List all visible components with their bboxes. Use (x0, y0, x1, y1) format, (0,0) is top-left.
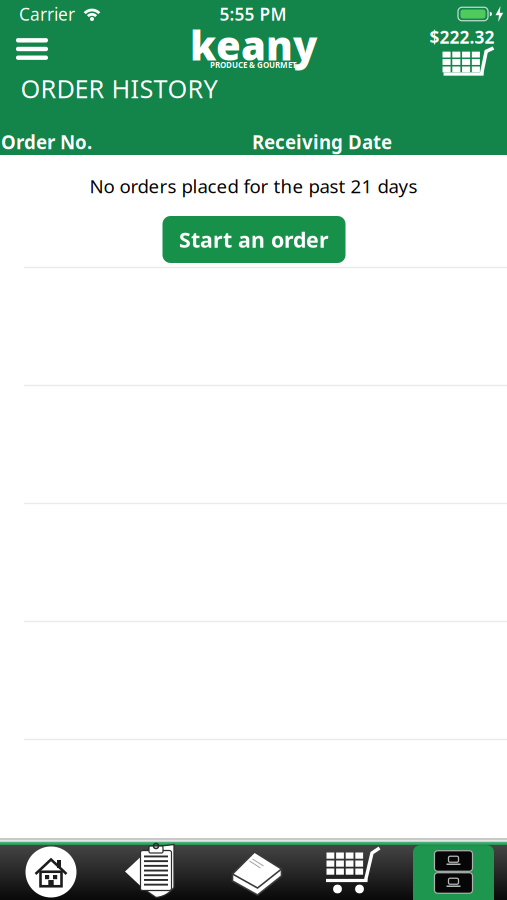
button[interactable] (0, 838, 101, 900)
button[interactable] (12, 34, 52, 64)
staticText: $222.32 (429, 25, 494, 48)
staticText: ORDER HISTORY (20, 72, 217, 105)
button[interactable] (101, 838, 203, 900)
button[interactable]: $222.32 (424, 25, 500, 79)
button[interactable] (304, 838, 406, 900)
button[interactable]: keany (193, 25, 313, 73)
staticText: keany (190, 18, 317, 71)
button[interactable]: Start an order (162, 216, 345, 263)
staticText: Receiving Date (252, 130, 392, 154)
staticText: Carrier (19, 2, 75, 25)
staticText: PRODUCE & GOURMET (210, 60, 297, 70)
staticText: 5:55 PM (219, 2, 286, 25)
staticText: No orders placed for the past 21 days (89, 174, 417, 198)
staticText: Order No. (1, 130, 92, 154)
button[interactable] (203, 838, 304, 900)
staticText: Start an order (179, 225, 329, 254)
button[interactable] (406, 838, 507, 900)
